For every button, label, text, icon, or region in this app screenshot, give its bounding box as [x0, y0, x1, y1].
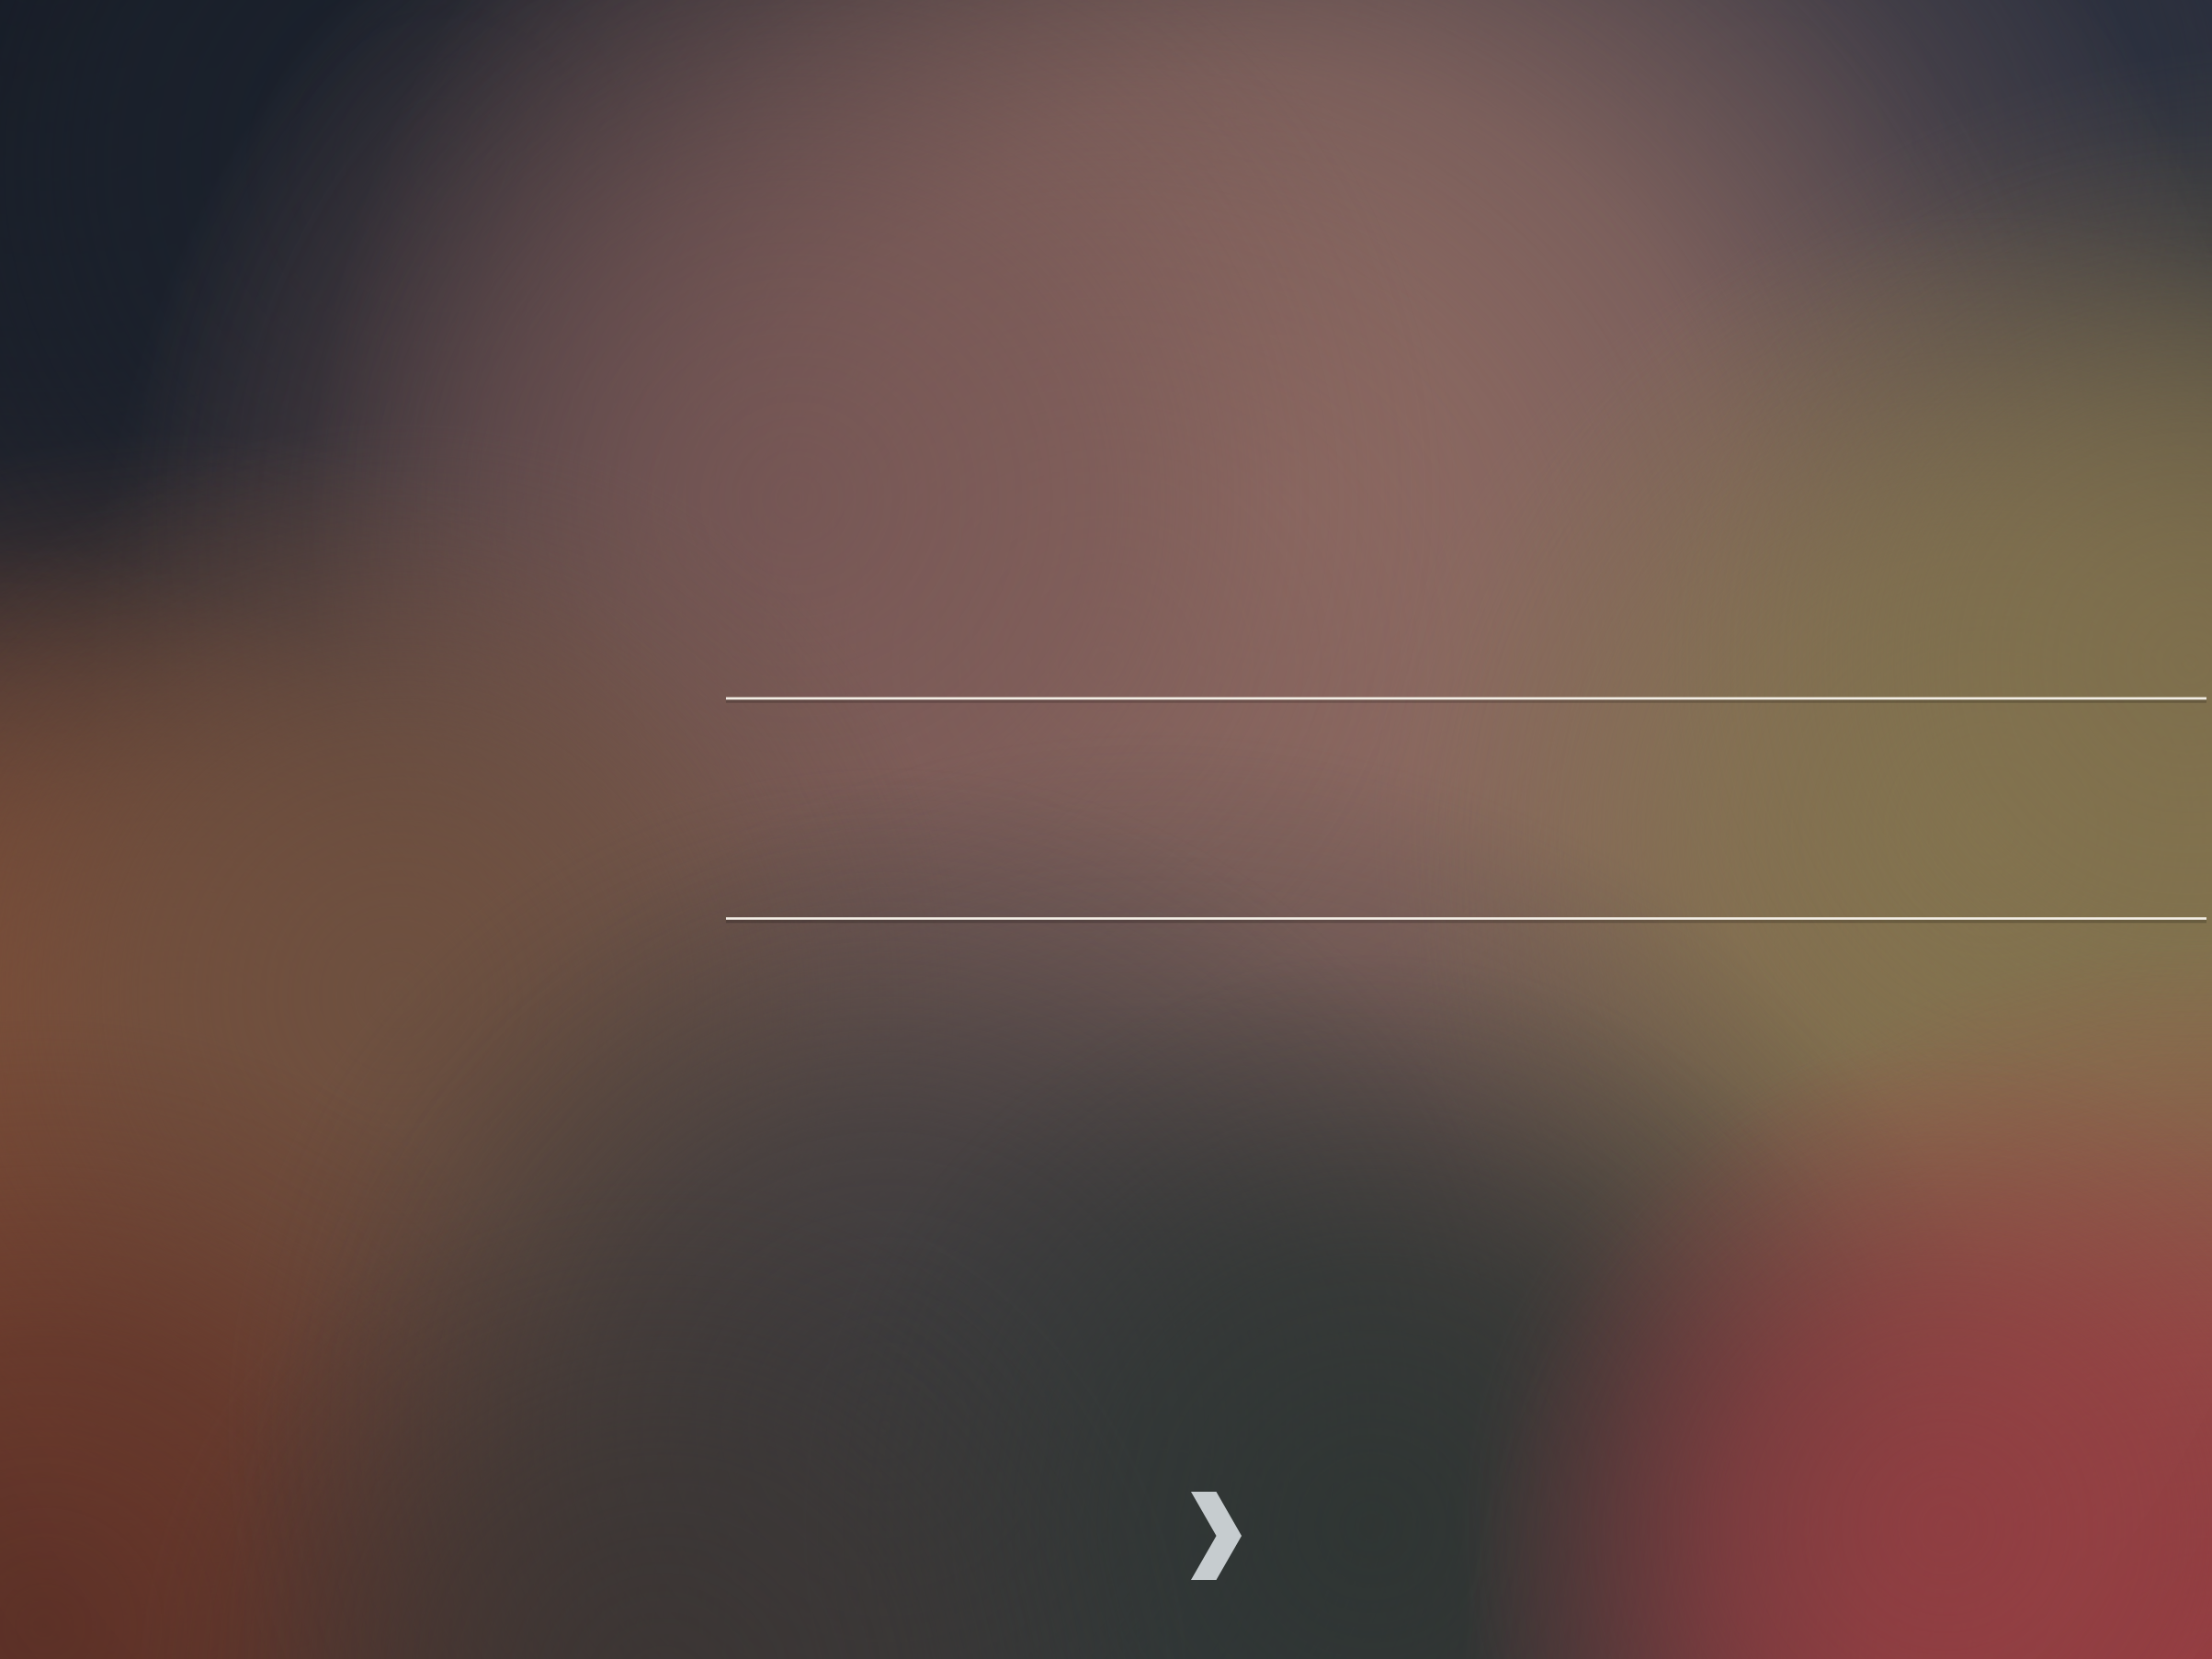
button[interactable]: Next	[0, 0, 2212, 1659]
